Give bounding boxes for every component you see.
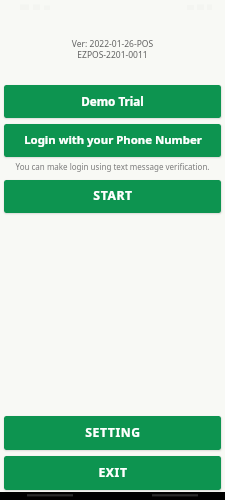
staticText: Login with your Phone Number bbox=[24, 132, 202, 148]
staticText: You can make login using text message ve… bbox=[0, 161, 225, 172]
button[interactable]: START bbox=[4, 180, 221, 213]
staticText: SETTING bbox=[85, 424, 141, 441]
staticText: Demo Trial bbox=[81, 93, 144, 109]
button[interactable]: Login with your Phone Number bbox=[4, 124, 221, 157]
staticText: Ver: 2022-01-26-POS bbox=[0, 38, 225, 50]
staticText: START bbox=[93, 187, 133, 204]
button[interactable]: EXIT bbox=[4, 456, 221, 490]
button[interactable]: SETTING bbox=[4, 416, 221, 450]
staticText: EZPOS-2201-0011 bbox=[0, 49, 225, 61]
button[interactable]: Demo Trial bbox=[4, 85, 221, 118]
staticText: EXIT bbox=[98, 464, 128, 481]
